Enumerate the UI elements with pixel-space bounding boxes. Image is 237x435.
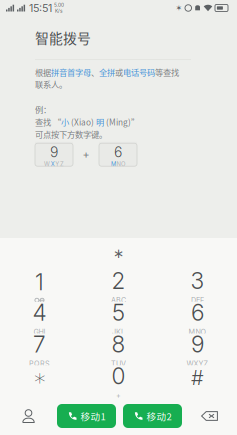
staticText: 1 <box>35 268 44 296</box>
staticText: (Xiao) <box>69 116 96 128</box>
staticText: 查找 “ <box>35 116 61 128</box>
button[interactable]: 6 <box>158 302 237 334</box>
staticText: 8 <box>111 331 125 358</box>
staticText: 5.00 <box>54 2 64 8</box>
staticText: 移动1 <box>80 409 105 423</box>
staticText: 小 <box>61 116 69 128</box>
staticText: JKL <box>112 328 125 336</box>
staticText: + <box>116 391 121 400</box>
staticText: 4 <box>32 299 46 326</box>
button[interactable]: 2 <box>79 270 158 302</box>
button[interactable]: # <box>158 365 237 397</box>
staticText: K/s <box>55 8 63 14</box>
staticText: ∗ <box>113 246 124 261</box>
staticText: 6 <box>191 299 204 326</box>
staticText: 、 <box>91 66 99 78</box>
staticText: ∗ <box>32 364 46 391</box>
staticText: M <box>111 161 116 168</box>
button[interactable]: 8 <box>79 333 158 365</box>
staticText: 等查找 <box>155 66 179 78</box>
staticText: 拼音首字母 <box>51 66 91 78</box>
button[interactable]: Contacts <box>0 399 57 433</box>
staticText: 6 <box>114 144 122 161</box>
staticText: 7 <box>33 331 46 358</box>
button[interactable]: 1 <box>0 270 79 302</box>
staticText: 智能拨号 <box>35 27 91 48</box>
staticText: MNO <box>188 328 206 336</box>
button[interactable]: 5 <box>79 302 158 334</box>
button[interactable]: Delete <box>182 399 237 433</box>
staticText: Y <box>55 161 59 168</box>
staticText: W <box>44 161 50 168</box>
staticText: 2 <box>111 267 125 294</box>
staticText: DEF <box>191 296 204 305</box>
button[interactable]: 9 <box>158 333 237 365</box>
staticText: (Ming)” <box>104 116 139 128</box>
staticText: + <box>82 148 89 161</box>
staticText: 根据 <box>35 66 51 78</box>
staticText: X <box>51 161 55 168</box>
staticText: 联系人。 <box>35 78 67 90</box>
staticText: 明 <box>96 116 104 128</box>
button[interactable]: ∗ <box>0 365 79 397</box>
button[interactable]: 0 <box>79 365 158 397</box>
button[interactable]: 4 <box>0 302 79 334</box>
staticText: ✶ <box>175 3 182 13</box>
staticText: 可点按下方数字键。 <box>35 128 107 140</box>
staticText: TUV <box>111 359 126 368</box>
staticText: 3 <box>190 267 204 294</box>
staticText: 5 <box>112 299 125 326</box>
staticText: ABC <box>111 296 126 305</box>
staticText: 电话号码 <box>123 66 155 78</box>
staticText: Z <box>60 161 64 168</box>
staticText: 15:51 <box>29 1 52 14</box>
button[interactable]: 移动2 <box>123 404 182 428</box>
staticText: PQRS <box>29 359 50 368</box>
button[interactable]: 3 <box>158 270 237 302</box>
staticText: 例： <box>35 103 51 115</box>
staticText: N <box>116 161 120 168</box>
button[interactable]: 移动1 <box>57 404 116 428</box>
staticText: WXYZ <box>186 359 208 368</box>
staticText: # <box>191 365 204 390</box>
staticText: O <box>121 161 125 168</box>
staticText: 全拼 <box>99 66 115 78</box>
staticText: 或 <box>115 66 123 78</box>
button[interactable]: 7 <box>0 333 79 365</box>
staticText: 0 <box>111 362 125 390</box>
staticText: 9 <box>50 144 58 161</box>
staticText: 移动2 <box>146 409 171 423</box>
staticText: 9 <box>191 331 204 358</box>
staticText: GHI <box>33 328 45 336</box>
